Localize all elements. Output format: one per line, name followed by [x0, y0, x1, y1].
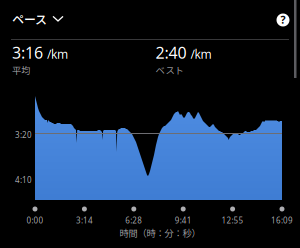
- staticText: 4:10: [15, 174, 32, 185]
- staticText: 6:28: [125, 215, 142, 226]
- staticText: 時間（時：分：秒）: [119, 226, 200, 239]
- staticText: 3:14: [76, 215, 93, 226]
- staticText: 3:20: [15, 129, 32, 140]
- staticText: ?: [280, 12, 285, 27]
- staticText: 16:09: [271, 215, 293, 226]
- button[interactable]: ヘルプ: [270, 7, 296, 33]
- staticText: 3:16: [12, 42, 43, 63]
- button[interactable]: ペース: [0, 3, 75, 34]
- staticText: ベスト: [155, 63, 183, 77]
- staticText: 平均: [12, 63, 30, 77]
- staticText: /km: [47, 46, 68, 62]
- staticText: ペース: [12, 10, 47, 27]
- staticText: 9:41: [175, 215, 192, 226]
- staticText: 0:00: [26, 215, 43, 226]
- staticText: 2:40: [155, 42, 186, 63]
- staticText: /km: [190, 46, 211, 62]
- staticText: 12:55: [222, 215, 244, 226]
